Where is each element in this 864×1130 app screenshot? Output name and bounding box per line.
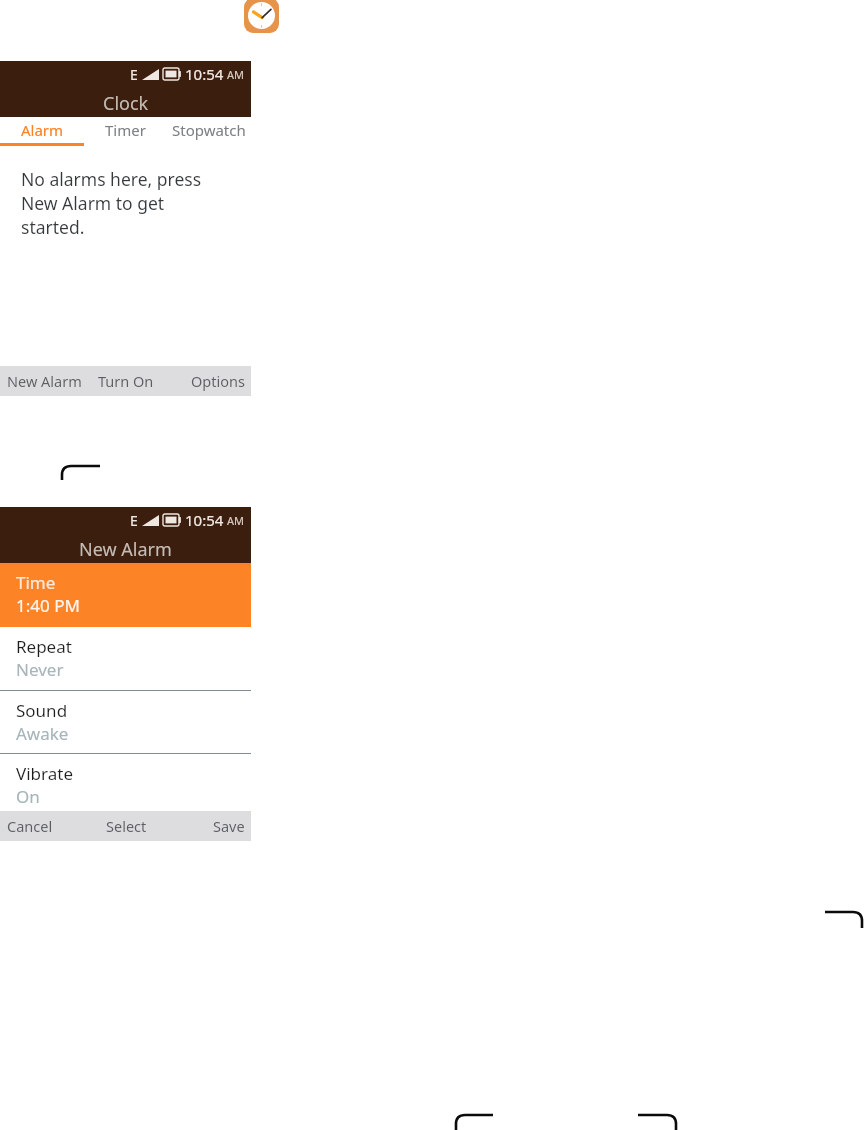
staticText: Select [106, 816, 147, 836]
staticText: 10:54 [185, 510, 224, 530]
staticText: Clock [103, 91, 149, 116]
button[interactable]: Turn On [84, 366, 168, 396]
button[interactable]: Sound [0, 691, 251, 753]
staticText: Awake [16, 722, 69, 745]
staticText: Cancel [7, 816, 53, 836]
staticText: Timer [105, 120, 146, 140]
staticText: 10:54 [185, 64, 224, 84]
staticText: No alarms here, press New Alarm to get s… [21, 167, 202, 239]
button[interactable]: Options [185, 366, 251, 396]
staticText: E [130, 65, 138, 84]
button[interactable]: Repeat [0, 627, 251, 690]
staticText: New Alarm [7, 371, 82, 391]
staticText: Repeat [16, 635, 72, 658]
staticText: Never [16, 658, 64, 681]
button[interactable]: Vibrate [0, 754, 251, 811]
button[interactable]: Select [84, 811, 168, 841]
staticText: Alarm [21, 120, 64, 140]
button[interactable]: Cancel [0, 811, 91, 841]
button[interactable]: Time [0, 563, 251, 627]
staticText: Stopwatch [172, 120, 246, 140]
button[interactable]: Stopwatch [166, 117, 251, 143]
staticText: Save [213, 816, 245, 836]
staticText: 1:40 PM [16, 594, 80, 617]
staticText: AM [227, 513, 245, 528]
button[interactable]: Clock app [244, 0, 279, 33]
staticText: Turn On [98, 371, 154, 391]
staticText: Vibrate [16, 762, 73, 785]
staticText: AM [227, 67, 245, 82]
staticText: Time [16, 571, 56, 594]
staticText: E [130, 511, 138, 530]
button[interactable]: Timer [84, 117, 166, 143]
button[interactable]: New Alarm [0, 366, 91, 396]
staticText: Options [191, 371, 245, 391]
button[interactable]: Alarm [0, 117, 84, 143]
staticText: On [16, 785, 40, 808]
staticText: New Alarm [79, 537, 172, 562]
staticText: Sound [16, 699, 68, 722]
button[interactable]: Save [185, 811, 251, 841]
